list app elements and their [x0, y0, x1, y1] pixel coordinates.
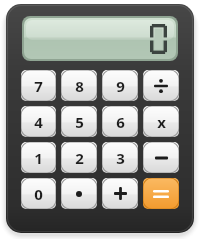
staticText: 1	[34, 148, 43, 168]
button[interactable]: 4	[21, 106, 56, 137]
button[interactable]: Subtract	[143, 142, 179, 173]
staticText: x	[157, 112, 166, 132]
staticText: 4	[34, 112, 43, 132]
staticText: 5	[75, 112, 84, 132]
button[interactable]: 1	[21, 142, 56, 173]
button[interactable]: 0	[21, 178, 56, 209]
button[interactable]: Decimal point	[61, 178, 97, 209]
button[interactable]: Equals	[143, 178, 179, 209]
staticText: 2	[75, 148, 84, 168]
button[interactable]: 5	[61, 106, 97, 137]
button[interactable]: 8	[61, 70, 97, 101]
button[interactable]: 9	[102, 70, 138, 101]
staticText: 0	[34, 184, 43, 204]
button[interactable]: Divide	[143, 70, 179, 101]
button[interactable]: 2	[61, 142, 97, 173]
button[interactable]: Add	[102, 178, 138, 209]
button[interactable]: 7	[21, 70, 56, 101]
staticText: 6	[116, 112, 125, 132]
staticText: 9	[116, 76, 125, 96]
button[interactable]: Multiply	[143, 106, 179, 137]
button[interactable]: 3	[102, 142, 138, 173]
staticText: 7	[34, 76, 43, 96]
staticText: 3	[116, 148, 125, 168]
button[interactable]: 6	[102, 106, 138, 137]
staticText: 8	[75, 76, 84, 96]
